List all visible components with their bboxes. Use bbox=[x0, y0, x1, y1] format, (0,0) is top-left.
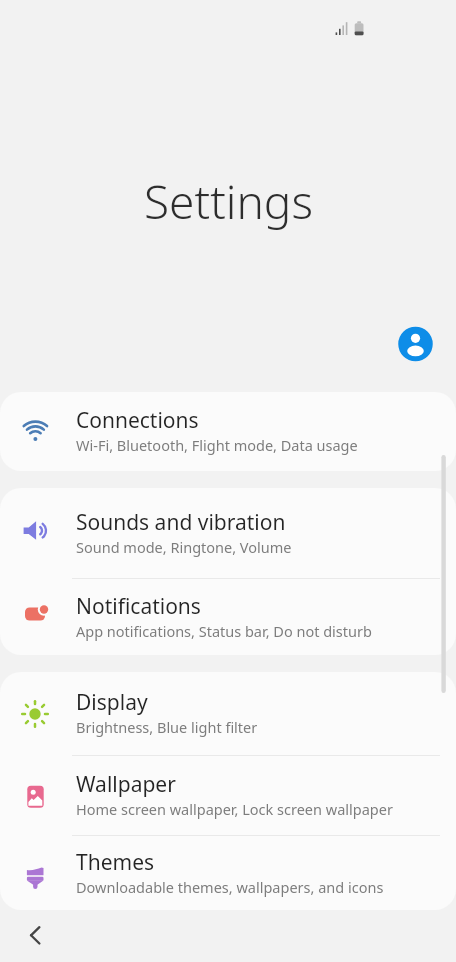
staticText: Wi-Fi, Bluetooth, Flight mode, Data usag… bbox=[76, 435, 358, 455]
staticText: Notifications bbox=[76, 592, 201, 621]
button[interactable]: Wallpaper bbox=[0, 756, 456, 835]
staticText: Themes bbox=[76, 848, 155, 877]
button[interactable]: Display bbox=[0, 672, 456, 755]
button[interactable] bbox=[398, 327, 433, 362]
button[interactable] bbox=[16, 917, 54, 955]
staticText: Brightness, Blue light filter bbox=[76, 717, 258, 737]
staticText: Wallpaper bbox=[76, 770, 176, 799]
staticText: App notifications, Status bar, Do not di… bbox=[76, 621, 372, 641]
button[interactable]: Connections bbox=[0, 392, 456, 471]
staticText: Downloadable themes, wallpapers, and ico… bbox=[76, 877, 384, 897]
button[interactable]: Themes bbox=[0, 836, 456, 910]
staticText: Home screen wallpaper, Lock screen wallp… bbox=[76, 799, 393, 819]
staticText: Connections bbox=[76, 406, 199, 435]
button[interactable]: Sounds and vibration bbox=[0, 488, 456, 578]
staticText: Display bbox=[76, 688, 148, 717]
staticText: Sound mode, Ringtone, Volume bbox=[76, 537, 292, 557]
staticText: Settings bbox=[144, 170, 313, 233]
staticText: Sounds and vibration bbox=[76, 508, 286, 537]
button[interactable]: Notifications bbox=[0, 579, 456, 655]
